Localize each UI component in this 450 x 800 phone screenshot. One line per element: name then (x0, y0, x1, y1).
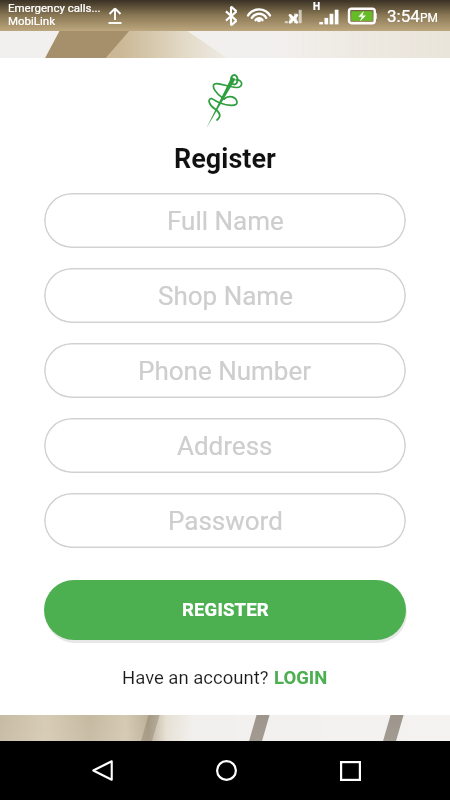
staticText: Phone Number (138, 356, 312, 386)
staticText: MobiLink (8, 14, 56, 27)
other: Upload (106, 7, 124, 25)
button[interactable]: Phone Number (44, 343, 406, 398)
staticText: Emergency calls... (8, 1, 101, 14)
staticText: PM (420, 11, 439, 25)
staticText: Register (174, 143, 276, 175)
button[interactable]: Shop Name (44, 268, 406, 323)
button[interactable]: REGISTER (44, 580, 406, 640)
staticText: Password (168, 506, 283, 536)
button[interactable]: LOGIN (274, 667, 328, 689)
button[interactable]: Home (181, 741, 271, 800)
staticText: 3:54 (387, 6, 420, 26)
staticText: REGISTER (182, 599, 269, 621)
button[interactable]: Full Name (44, 193, 406, 248)
staticText: H (313, 1, 321, 13)
staticText: Address (177, 431, 273, 461)
button[interactable]: Password (44, 493, 406, 548)
staticText: Full Name (167, 206, 284, 236)
button[interactable]: Back (57, 741, 147, 800)
staticText: Have an account? (122, 667, 274, 689)
staticText: Shop Name (158, 281, 293, 311)
button[interactable]: Recent apps (305, 741, 395, 800)
button[interactable]: Address (44, 418, 406, 473)
